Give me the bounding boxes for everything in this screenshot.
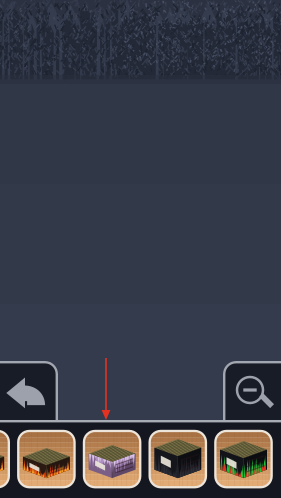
button[interactable]: Shadow crate	[148, 430, 207, 488]
button[interactable]: Nebula crate	[83, 430, 141, 488]
button[interactable]: Undo	[0, 361, 58, 420]
button[interactable]: Fire crate	[17, 430, 76, 488]
button[interactable]: Zoom out	[223, 361, 281, 420]
button[interactable]: Prisma crate	[214, 430, 273, 488]
button[interactable]: Fire crate	[0, 430, 10, 488]
